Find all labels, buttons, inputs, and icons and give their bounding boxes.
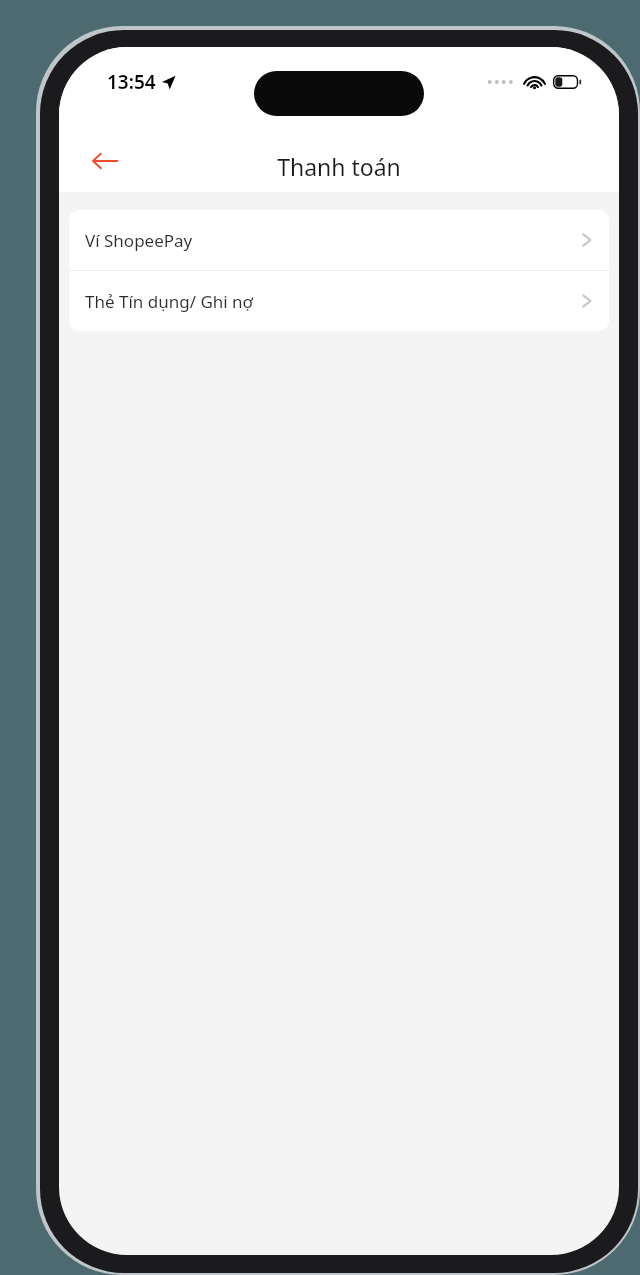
button[interactable]: Ví ShopeePay	[69, 210, 609, 270]
button[interactable]: Thẻ Tín dụng/ Ghi nợ	[69, 271, 609, 331]
staticText: Ví ShopeePay	[85, 229, 193, 252]
staticText: Thẻ Tín dụng/ Ghi nợ	[85, 290, 254, 313]
staticText: 13:54	[107, 69, 156, 95]
button[interactable]: Back	[79, 135, 131, 187]
staticText: Thanh toán	[59, 151, 619, 182]
